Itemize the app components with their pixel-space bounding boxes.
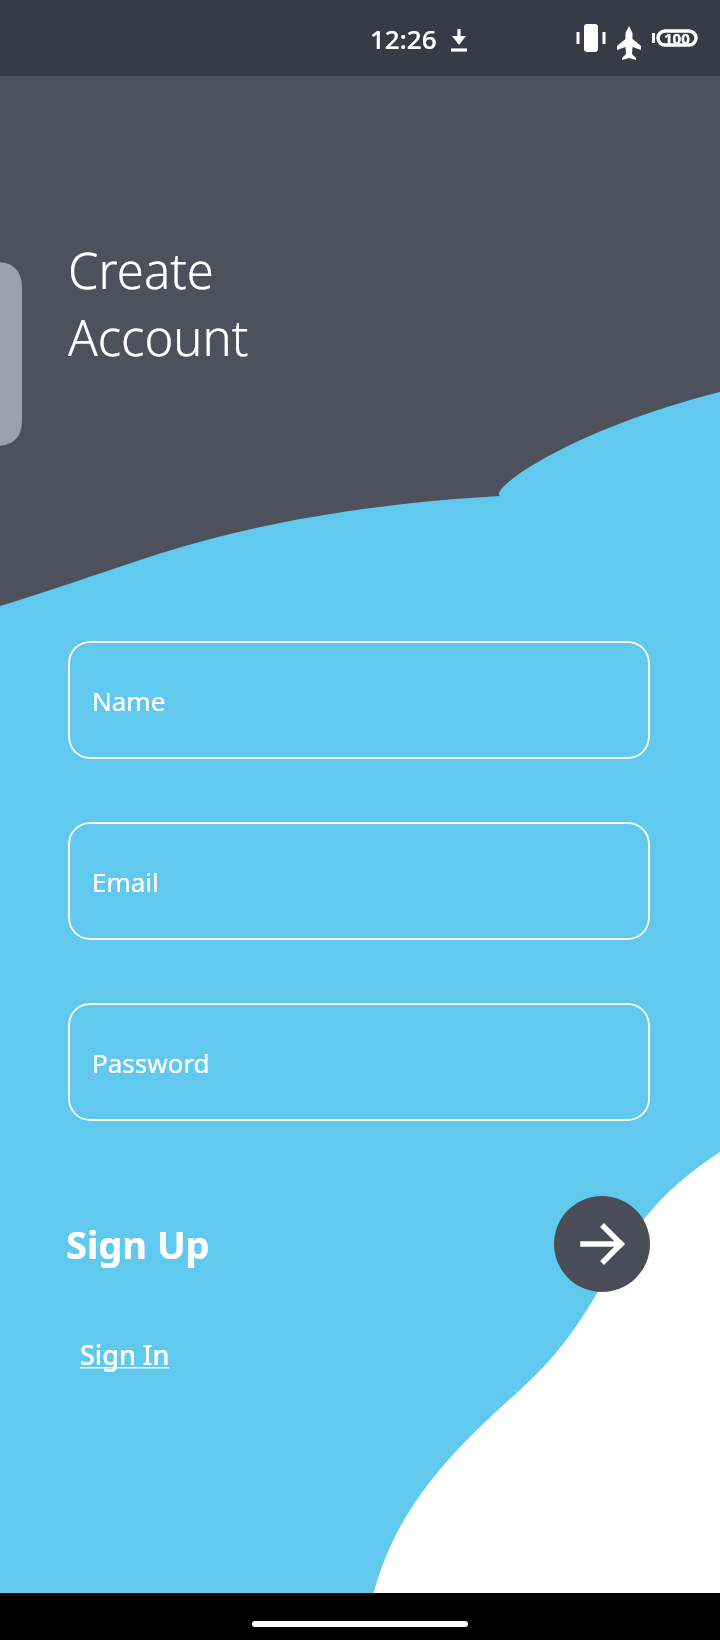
staticText: Sign In: [80, 1336, 170, 1373]
button[interactable]: Email: [68, 822, 650, 940]
button[interactable]: Sign Up: [554, 1196, 650, 1292]
staticText: Name: [92, 683, 166, 718]
staticText: Create: [68, 237, 214, 304]
staticText: Email: [92, 864, 159, 899]
staticText: Password: [92, 1045, 210, 1080]
staticText: 12:26: [370, 21, 437, 56]
staticText: Sign Up: [66, 1218, 210, 1270]
button[interactable]: Name: [68, 641, 650, 759]
staticText: 100: [664, 28, 690, 48]
button[interactable]: Password: [68, 1003, 650, 1121]
button[interactable]: Sign Up: [66, 1218, 210, 1270]
staticText: Account: [68, 304, 249, 371]
button[interactable]: Sign In: [80, 1336, 170, 1373]
